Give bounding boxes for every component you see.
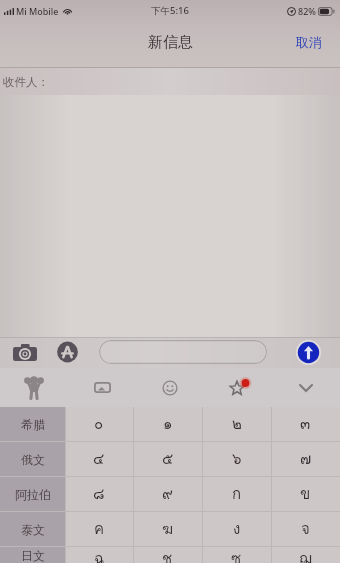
staticText: 收件人： <box>3 75 49 89</box>
button[interactable]: ๘ <box>65 477 133 511</box>
staticText: 希腊 <box>21 417 45 432</box>
button[interactable]: 取消 <box>282 26 340 58</box>
button[interactable]: 日文 <box>0 547 65 563</box>
staticText: ค <box>94 517 105 541</box>
staticText: ๙ <box>162 482 173 506</box>
button[interactable]: App Store <box>57 341 78 363</box>
button[interactable]: ข <box>271 477 340 511</box>
button[interactable]: Send <box>295 339 322 366</box>
button[interactable] <box>99 340 267 364</box>
staticText: 俄文 <box>21 452 45 467</box>
button[interactable]: 俄文 <box>0 442 65 476</box>
staticText: ฉ <box>94 547 105 563</box>
button[interactable]: ๒ <box>202 407 271 441</box>
staticText: ข <box>300 482 311 506</box>
button[interactable]: ๔ <box>65 442 133 476</box>
button[interactable]: Photos <box>68 368 136 407</box>
button[interactable]: Collapse keyboard <box>272 368 340 407</box>
button[interactable]: 阿拉伯 <box>0 477 65 511</box>
button[interactable]: ง <box>202 512 271 546</box>
staticText: ก <box>232 482 242 506</box>
button[interactable]: ๓ <box>271 407 340 441</box>
staticText: ง <box>233 517 241 541</box>
button[interactable]: ๙ <box>133 477 202 511</box>
staticText: 下午5:16 <box>151 4 189 17</box>
staticText: ๐ <box>94 412 104 436</box>
staticText: ๒ <box>232 412 242 436</box>
button[interactable]: ซ <box>202 547 271 563</box>
button[interactable]: 泰文 <box>0 512 65 546</box>
button[interactable]: Memoji <box>0 368 68 407</box>
button[interactable]: ค <box>65 512 133 546</box>
staticText: 阿拉伯 <box>15 487 51 502</box>
staticText: 82% <box>298 5 316 17</box>
staticText: ๑ <box>163 412 173 436</box>
button[interactable]: 收件人： <box>0 68 340 95</box>
button[interactable]: ๗ <box>271 442 340 476</box>
button[interactable]: ช <box>133 547 202 563</box>
staticText: 日文 <box>21 548 45 563</box>
staticText: 取消 <box>296 34 322 50</box>
staticText: ๔ <box>93 447 105 471</box>
staticText: ช <box>162 547 173 563</box>
button[interactable]: 希腊 <box>0 407 65 441</box>
staticText: ๗ <box>300 447 312 471</box>
button[interactable]: ฉ <box>65 547 133 563</box>
button[interactable]: Stickers <box>204 368 272 407</box>
staticText: ๕ <box>162 447 174 471</box>
staticText: ฌ <box>299 547 312 563</box>
button[interactable]: ๑ <box>133 407 202 441</box>
staticText: 新信息 <box>148 33 193 52</box>
button[interactable]: ฌ <box>271 547 340 563</box>
button[interactable]: ฆ <box>133 512 202 546</box>
staticText: ๖ <box>232 447 242 471</box>
button[interactable]: Take photo <box>11 341 38 363</box>
button[interactable]: ๐ <box>65 407 133 441</box>
staticText: ๓ <box>300 412 311 436</box>
button[interactable]: ๕ <box>133 442 202 476</box>
button[interactable]: Emoji <box>136 368 204 407</box>
button[interactable]: ก <box>202 477 271 511</box>
staticText: Mi Mobile <box>16 5 59 17</box>
staticText: ฆ <box>162 517 174 541</box>
button[interactable]: ๖ <box>202 442 271 476</box>
staticText: ซ <box>231 547 242 563</box>
button[interactable]: จ <box>271 512 340 546</box>
staticText: ๘ <box>93 482 105 506</box>
staticText: 泰文 <box>21 522 45 537</box>
staticText: จ <box>301 517 310 541</box>
